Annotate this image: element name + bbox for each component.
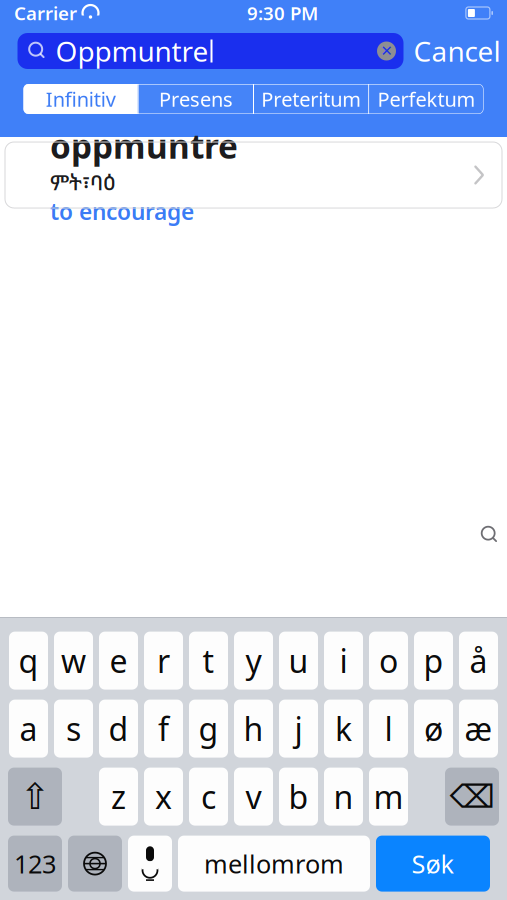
button[interactable]: t: [189, 632, 228, 690]
button[interactable]: g: [189, 700, 228, 758]
staticText: i: [339, 639, 347, 682]
staticText: Presens: [159, 86, 233, 112]
button[interactable]: h: [234, 700, 273, 758]
button[interactable]: l: [369, 700, 408, 758]
staticText: u: [288, 639, 308, 682]
staticText: o: [379, 639, 398, 682]
staticText: z: [111, 775, 126, 818]
button[interactable]: u: [279, 632, 318, 690]
button[interactable]: Perfektum: [369, 84, 483, 114]
staticText: ø: [424, 707, 443, 750]
button[interactable]: z: [99, 768, 138, 826]
button[interactable]: b: [279, 768, 318, 826]
staticText: a: [19, 707, 37, 750]
button[interactable]: Next keyboard: [68, 836, 122, 892]
staticText: m: [373, 775, 403, 818]
staticText: b: [288, 775, 308, 818]
button[interactable]: q: [9, 632, 48, 690]
button[interactable]: f: [144, 700, 183, 758]
button[interactable]: k: [324, 700, 363, 758]
button[interactable]: 123: [8, 836, 62, 892]
staticText: t: [202, 639, 214, 682]
button[interactable]: Clear text: [371, 34, 401, 68]
staticText: s: [66, 707, 81, 750]
staticText: e: [109, 639, 127, 682]
button[interactable]: s: [54, 700, 93, 758]
button[interactable]: c: [189, 768, 228, 826]
staticText: Carrier: [14, 1, 77, 25]
button[interactable]: oppmuntre: [5, 142, 502, 208]
button[interactable]: d: [99, 700, 138, 758]
button[interactable]: å: [459, 632, 498, 690]
staticText: ✕: [380, 43, 392, 59]
staticText: c: [201, 775, 216, 818]
button[interactable]: Preteritum: [254, 84, 368, 114]
staticText: j: [294, 707, 302, 750]
button[interactable]: mellomrom: [178, 836, 370, 892]
button[interactable]: x: [144, 768, 183, 826]
staticText: r: [157, 639, 170, 682]
staticText: h: [243, 707, 263, 750]
staticText: Søk: [411, 847, 454, 880]
staticText: Perfektum: [377, 86, 475, 112]
button[interactable]: o: [369, 632, 408, 690]
button[interactable]: y: [234, 632, 273, 690]
staticText: ምት፣ባዕ: [50, 168, 116, 196]
button[interactable]: Infinitiv: [23, 84, 138, 114]
staticText: k: [335, 707, 352, 750]
button[interactable]: r: [144, 632, 183, 690]
button[interactable]: Shift: [8, 768, 62, 826]
staticText: d: [108, 707, 128, 750]
button[interactable]: Cancel: [403, 31, 507, 71]
button[interactable]: ø: [414, 700, 453, 758]
staticText: mellomrom: [204, 847, 344, 880]
staticText: g: [198, 707, 218, 750]
button[interactable]: v: [234, 768, 273, 826]
staticText: Cancel: [413, 32, 500, 70]
staticText: 9:30 PM: [247, 1, 318, 25]
staticText: oppmuntre: [50, 124, 238, 168]
staticText: Preteritum: [261, 86, 361, 112]
staticText: n: [333, 775, 353, 818]
staticText: f: [158, 707, 169, 750]
staticText: q: [18, 639, 38, 682]
button[interactable]: a: [9, 700, 48, 758]
staticText: x: [155, 775, 172, 818]
button[interactable]: p: [414, 632, 453, 690]
staticText: w: [61, 639, 86, 682]
staticText: å: [469, 639, 487, 682]
button[interactable]: i: [324, 632, 363, 690]
button[interactable]: æ: [459, 700, 498, 758]
button[interactable]: n: [324, 768, 363, 826]
button[interactable]: j: [279, 700, 318, 758]
staticText: v: [245, 775, 261, 818]
staticText: p: [423, 639, 443, 682]
button[interactable]: Presens: [139, 84, 253, 114]
button[interactable]: Delete: [445, 768, 499, 826]
staticText: Infinitiv: [46, 86, 116, 112]
staticText: to encourage: [50, 196, 194, 226]
button[interactable]: Søk: [376, 836, 490, 892]
staticText: Oppmuntre: [55, 32, 208, 70]
staticText: 123: [14, 847, 56, 880]
staticText: l: [384, 707, 392, 750]
staticText: æ: [464, 707, 492, 750]
button[interactable]: Dictate: [128, 836, 172, 892]
button[interactable]: m: [369, 768, 408, 826]
button[interactable]: e: [99, 632, 138, 690]
staticText: ⇧: [20, 776, 50, 817]
staticText: ⌫: [449, 778, 494, 815]
button[interactable]: w: [54, 632, 93, 690]
staticText: y: [245, 639, 261, 682]
